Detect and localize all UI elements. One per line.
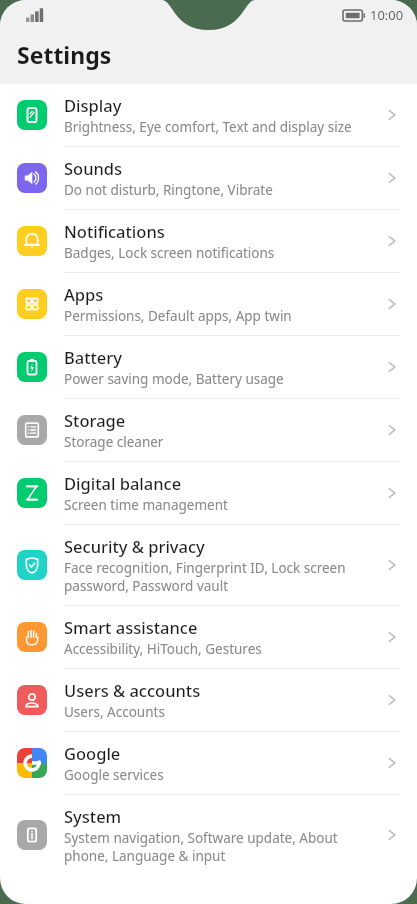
staticText: Power saving mode, Battery usage	[64, 370, 284, 388]
staticText: System navigation, Software update, Abou…	[64, 829, 373, 865]
staticText: Permissions, Default apps, App twin	[64, 307, 292, 325]
other: Open Notifications	[381, 230, 403, 252]
staticText: Users, Accounts	[64, 703, 165, 721]
staticText: Settings	[17, 39, 112, 70]
staticText: Badges, Lock screen notifications	[64, 244, 275, 262]
staticText: System	[64, 805, 122, 827]
button[interactable]: Google	[0, 732, 417, 794]
other: Open Digital balance	[381, 482, 403, 504]
staticText: Notifications	[64, 220, 165, 242]
staticText: Apps	[64, 283, 104, 305]
staticText: Smart assistance	[64, 616, 198, 638]
staticText: Digital balance	[64, 472, 182, 494]
staticText: Storage cleaner	[64, 433, 164, 451]
staticText: Battery	[64, 346, 123, 368]
other: Open Battery	[381, 356, 403, 378]
other: Open Storage	[381, 419, 403, 441]
other: Open Apps	[381, 293, 403, 315]
button[interactable]: Notifications	[0, 210, 417, 272]
other: Open Sounds	[381, 167, 403, 189]
button[interactable]: Battery	[0, 336, 417, 398]
other: Open Google	[381, 752, 403, 774]
other: Open System	[381, 824, 403, 846]
staticText: Security & privacy	[64, 535, 205, 557]
staticText: Users & accounts	[64, 679, 201, 701]
button[interactable]: Sounds	[0, 147, 417, 209]
staticText: Google services	[64, 766, 164, 784]
button[interactable]: Apps	[0, 273, 417, 335]
staticText: 10:00	[370, 6, 404, 24]
button[interactable]: Storage	[0, 399, 417, 461]
other: Open Users & accounts	[381, 689, 403, 711]
button[interactable]: Digital balance	[0, 462, 417, 524]
staticText: Storage	[64, 409, 126, 431]
button[interactable]: Smart assistance	[0, 606, 417, 668]
staticText: Brightness, Eye comfort, Text and displa…	[64, 118, 352, 136]
button[interactable]: System	[0, 795, 417, 875]
button[interactable]: Security & privacy	[0, 525, 417, 605]
staticText: Face recognition, Fingerprint ID, Lock s…	[64, 559, 373, 595]
staticText: Sounds	[64, 157, 123, 179]
other: Open Security & privacy	[381, 554, 403, 576]
button[interactable]: Display	[0, 84, 417, 146]
other: Open Display	[381, 104, 403, 126]
staticText: Accessibility, HiTouch, Gestures	[64, 640, 262, 658]
staticText: Screen time management	[64, 496, 228, 514]
staticText: Display	[64, 94, 122, 116]
staticText: Do not disturb, Ringtone, Vibrate	[64, 181, 273, 199]
other: Open Smart assistance	[381, 626, 403, 648]
button[interactable]: Users & accounts	[0, 669, 417, 731]
staticText: Google	[64, 742, 121, 764]
